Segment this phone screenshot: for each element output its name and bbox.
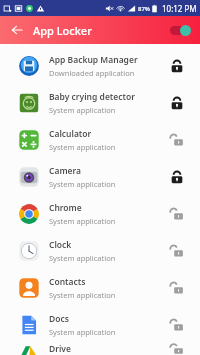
button[interactable]: Master lock toggle — [168, 22, 194, 38]
staticText: Camera — [49, 165, 82, 177]
staticText: Downloaded application — [49, 68, 135, 78]
button[interactable]: Locked — [164, 90, 190, 116]
staticText: System application — [49, 105, 116, 115]
staticText: Calculator — [49, 128, 92, 140]
button[interactable]: Back — [8, 21, 26, 39]
button[interactable]: Unlocked — [164, 312, 190, 338]
staticText: System application — [49, 179, 116, 189]
button[interactable]: App Backup Manager — [0, 47, 200, 84]
button[interactable]: Baby crying detector — [0, 84, 200, 121]
button[interactable]: Locked — [164, 53, 190, 79]
button[interactable]: Unlocked — [164, 238, 190, 264]
staticText: Drive — [49, 343, 71, 355]
button[interactable]: Clock — [0, 232, 200, 269]
staticText: System application — [49, 327, 116, 337]
button[interactable]: Unlocked — [164, 343, 190, 355]
staticText: 87% — [138, 5, 150, 13]
button[interactable]: Camera — [0, 158, 200, 195]
button[interactable]: Chrome — [0, 195, 200, 232]
button[interactable]: Locked — [164, 164, 190, 190]
staticText: System application — [49, 216, 116, 226]
staticText: Baby crying detector — [49, 91, 135, 103]
staticText: 10:12 PM — [162, 3, 197, 14]
staticText: Contacts — [49, 276, 86, 288]
button[interactable]: Unlocked — [164, 275, 190, 301]
button[interactable]: Unlocked — [164, 201, 190, 227]
staticText: Chrome — [49, 202, 82, 214]
staticText: System application — [49, 142, 116, 152]
button[interactable]: Docs — [0, 306, 200, 343]
staticText: System application — [49, 253, 116, 263]
staticText: App Backup Manager — [49, 54, 138, 66]
button[interactable]: Drive — [0, 343, 200, 355]
staticText: System application — [49, 290, 116, 300]
staticText: Docs — [49, 313, 69, 325]
button[interactable]: Contacts — [0, 269, 200, 306]
button[interactable]: Unlocked — [164, 127, 190, 153]
button[interactable]: Calculator — [0, 121, 200, 158]
staticText: Clock — [49, 239, 72, 251]
staticText: App Locker — [33, 23, 92, 38]
